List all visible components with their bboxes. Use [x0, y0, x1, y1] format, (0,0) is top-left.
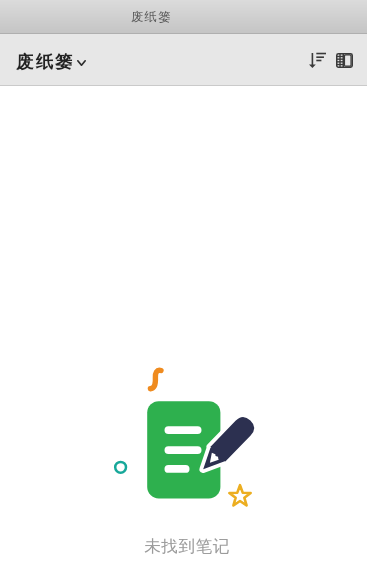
staticText: 废纸篓: [16, 51, 75, 73]
staticText: 未找到笔记: [144, 536, 230, 557]
button[interactable]: 废纸篓: [16, 51, 86, 73]
button[interactable]: Sort: [300, 43, 334, 77]
staticText: 废纸篓: [131, 9, 172, 25]
button[interactable]: View mode: [327, 43, 361, 77]
